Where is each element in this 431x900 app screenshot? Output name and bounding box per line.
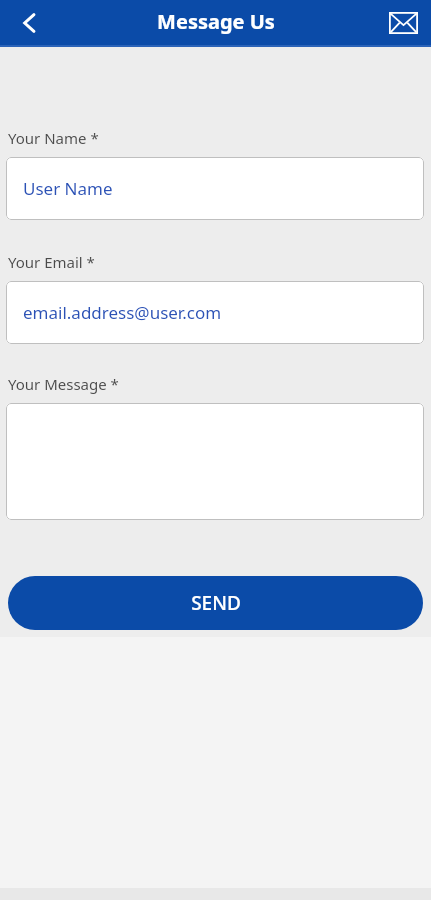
button[interactable]: User Name (6, 157, 424, 220)
staticText: Your Message * (8, 374, 119, 394)
staticText: email.address@user.com (23, 301, 222, 324)
button[interactable]: SEND (8, 576, 423, 630)
button[interactable]: Messages (383, 3, 423, 43)
staticText: SEND (191, 590, 241, 616)
button[interactable]: Back (10, 3, 50, 43)
button[interactable]: email.address@user.com (6, 281, 424, 344)
staticText: Your Name * (8, 128, 99, 148)
staticText: User Name (23, 177, 113, 200)
staticText: Message Us (157, 8, 275, 35)
button[interactable] (6, 403, 424, 520)
staticText: Your Email * (8, 252, 95, 272)
